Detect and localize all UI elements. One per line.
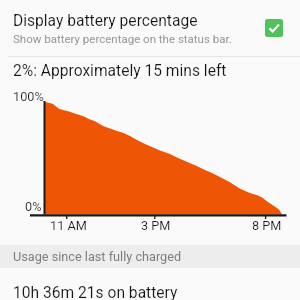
staticText: 0%: [25, 199, 42, 214]
staticText: 2%: Approximately 15 mins left: [13, 62, 227, 80]
staticText: 100%: [13, 89, 44, 104]
staticText: 11 AM: [50, 218, 87, 233]
staticText: 10h 36m 21s on battery: [13, 284, 178, 300]
staticText: 3 PM: [141, 218, 171, 233]
staticText: Display battery percentage: [13, 12, 198, 30]
staticText: Usage since last fully charged: [13, 249, 182, 264]
button[interactable]: Display battery percentage checkbox: [265, 19, 283, 37]
button[interactable]: 10h 36m 21s on battery: [0, 268, 300, 300]
button[interactable]: Display battery percentage: [0, 0, 300, 56]
staticText: Show battery percentage on the status ba…: [13, 32, 232, 45]
staticText: 8 PM: [252, 218, 282, 233]
